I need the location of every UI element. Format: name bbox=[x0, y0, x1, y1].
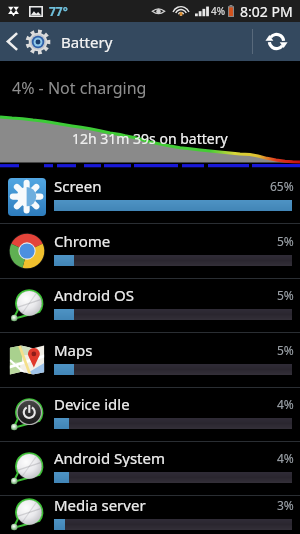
button[interactable]: Chrome bbox=[0, 224, 300, 278]
staticText: 3% bbox=[277, 497, 294, 513]
button[interactable]: Media server bbox=[0, 496, 300, 534]
staticText: Android System bbox=[54, 448, 166, 467]
staticText: Device idle bbox=[54, 394, 130, 413]
button[interactable]: Refresh bbox=[253, 22, 300, 61]
staticText: Screen bbox=[54, 176, 102, 195]
staticText: 5% bbox=[277, 287, 294, 303]
staticText: Media server bbox=[54, 495, 146, 514]
button[interactable]: Android System bbox=[0, 442, 300, 495]
staticText: Maps bbox=[54, 340, 93, 359]
staticText: Chrome bbox=[54, 231, 111, 250]
staticText: Battery bbox=[61, 32, 113, 52]
staticText: 65% bbox=[270, 178, 294, 194]
staticText: 8:02 PM bbox=[240, 2, 293, 21]
staticText: 12h 31m 39s on battery bbox=[72, 129, 228, 148]
button[interactable]: Maps bbox=[0, 333, 300, 387]
staticText: 5% bbox=[277, 233, 294, 249]
button[interactable]: Battery bbox=[0, 22, 121, 61]
button[interactable]: Screen bbox=[0, 170, 300, 223]
staticText: Android OS bbox=[54, 285, 134, 304]
staticText: 4% - Not charging bbox=[12, 77, 147, 99]
button[interactable]: Device idle bbox=[0, 388, 300, 441]
staticText: 4% bbox=[277, 450, 294, 466]
button[interactable]: Android OS bbox=[0, 279, 300, 332]
staticText: 5% bbox=[277, 342, 294, 358]
staticText: 77° bbox=[49, 3, 68, 19]
staticText: 4% bbox=[211, 4, 226, 18]
staticText: 4% bbox=[277, 396, 294, 412]
